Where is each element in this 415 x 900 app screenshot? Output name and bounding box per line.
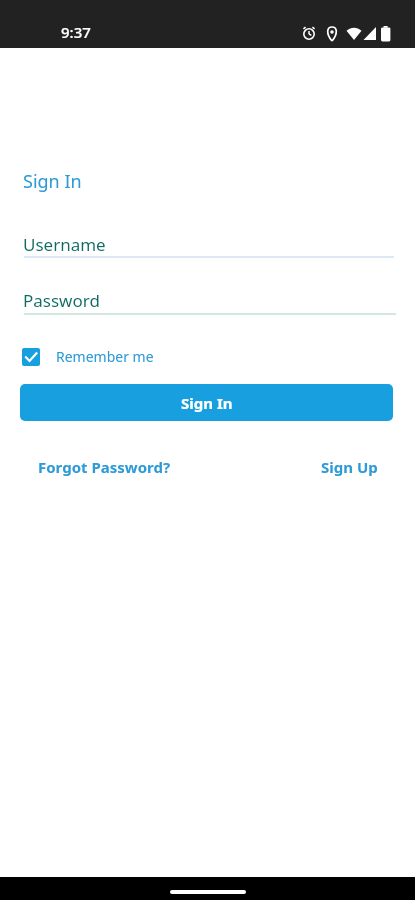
button[interactable]: Forgot Password?: [38, 457, 171, 477]
staticText: Sign In: [181, 393, 233, 413]
button[interactable]: Sign Up: [321, 457, 378, 477]
button[interactable]: Sign In: [20, 384, 393, 421]
staticText: Remember me: [56, 347, 154, 366]
staticText: Username: [23, 233, 106, 256]
staticText: Password: [23, 289, 100, 312]
staticText: 9:37: [61, 22, 91, 42]
staticText: Sign In: [23, 169, 82, 194]
button[interactable]: Remember me: [22, 347, 154, 366]
